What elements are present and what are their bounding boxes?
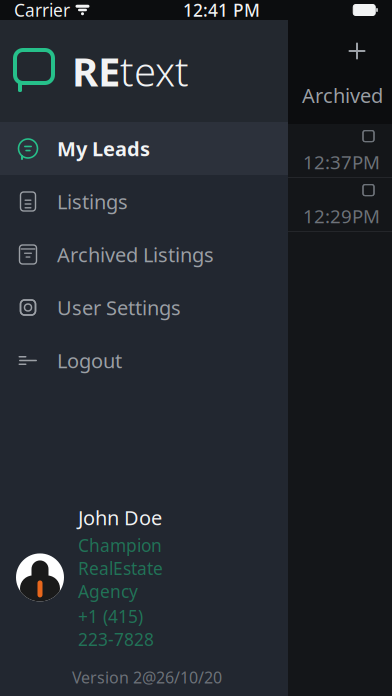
staticText: RE [72,44,120,97]
staticText: 12:37PM [303,150,380,174]
staticText: +1 (415) 223-7828 [78,605,154,651]
staticText: 12:29PM [303,204,380,228]
staticText: Version 2@26/10/20 [72,667,222,688]
button[interactable]: 12:37PM [288,124,392,177]
button[interactable]: Add [340,34,374,68]
staticText: 12:41 PM [183,0,260,21]
staticText: Champion RealEstate Agency [78,534,163,603]
button[interactable]: My Leads [0,122,288,175]
staticText: Archived Listings [57,241,214,268]
staticText: My Leads [57,135,150,162]
staticText: Carrier [14,0,70,21]
staticText: John Doe [78,504,162,531]
staticText: text [120,44,189,97]
staticText: Archived [302,82,383,109]
staticText: Logout [57,347,122,374]
button[interactable]: Logout [0,334,288,387]
staticText: User Settings [57,294,181,321]
button[interactable]: User Settings [0,281,288,334]
button[interactable]: Archived Listings [0,228,288,281]
staticText: Listings [57,188,128,215]
button[interactable]: John Doe [0,504,288,651]
button[interactable]: Listings [0,175,288,228]
button[interactable]: 12:29PM [288,178,392,231]
